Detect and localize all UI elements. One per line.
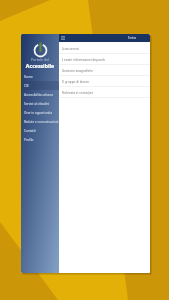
- staticText: CIE: [24, 84, 29, 88]
- button[interactable]: Orari e opportunita: [21, 108, 59, 117]
- button[interactable]: CIE: [21, 81, 59, 90]
- button[interactable]: Servizi al cittadini: [21, 99, 59, 108]
- button[interactable]: Entra: [128, 36, 150, 40]
- button[interactable]: Home: [21, 72, 59, 81]
- button[interactable]: Menu: [59, 34, 67, 42]
- button[interactable]: Contatti: [21, 126, 59, 135]
- staticText: Profilo: [24, 138, 34, 142]
- staticText: Gestione anagrafiche: [62, 69, 93, 73]
- staticText: Richiesta in corso/pre: [62, 91, 94, 95]
- button[interactable]: Profilo: [21, 135, 59, 144]
- staticText: Accessibilita urbana: [24, 93, 53, 97]
- staticText: Entra: [128, 36, 136, 40]
- staticText: Il gruppo di lavoro: [62, 80, 89, 84]
- staticText: Notizie e comunicazioni: [24, 120, 59, 124]
- staticText: Orari e opportunita: [24, 111, 53, 115]
- staticText: Accessibile: [21, 62, 59, 69]
- button[interactable]: Accessibilita urbana: [21, 90, 59, 99]
- button[interactable]: Lista servizi: [59, 43, 150, 54]
- button[interactable]: Il gruppo di lavoro: [59, 76, 150, 87]
- staticText: Contatti: [24, 129, 36, 133]
- staticText: I nostri informazioni disponib: [62, 58, 105, 62]
- button[interactable]: Notizie e comunicazioni: [21, 117, 59, 126]
- staticText: Servizi al cittadini: [24, 102, 50, 106]
- button[interactable]: Richiesta in corso/pre: [59, 87, 150, 98]
- button[interactable]: I nostri informazioni disponib: [59, 54, 150, 65]
- staticText: Lista servizi: [62, 47, 79, 51]
- staticText: Portale del: [21, 57, 59, 62]
- button[interactable]: Gestione anagrafiche: [59, 65, 150, 76]
- staticText: Home: [24, 75, 33, 79]
